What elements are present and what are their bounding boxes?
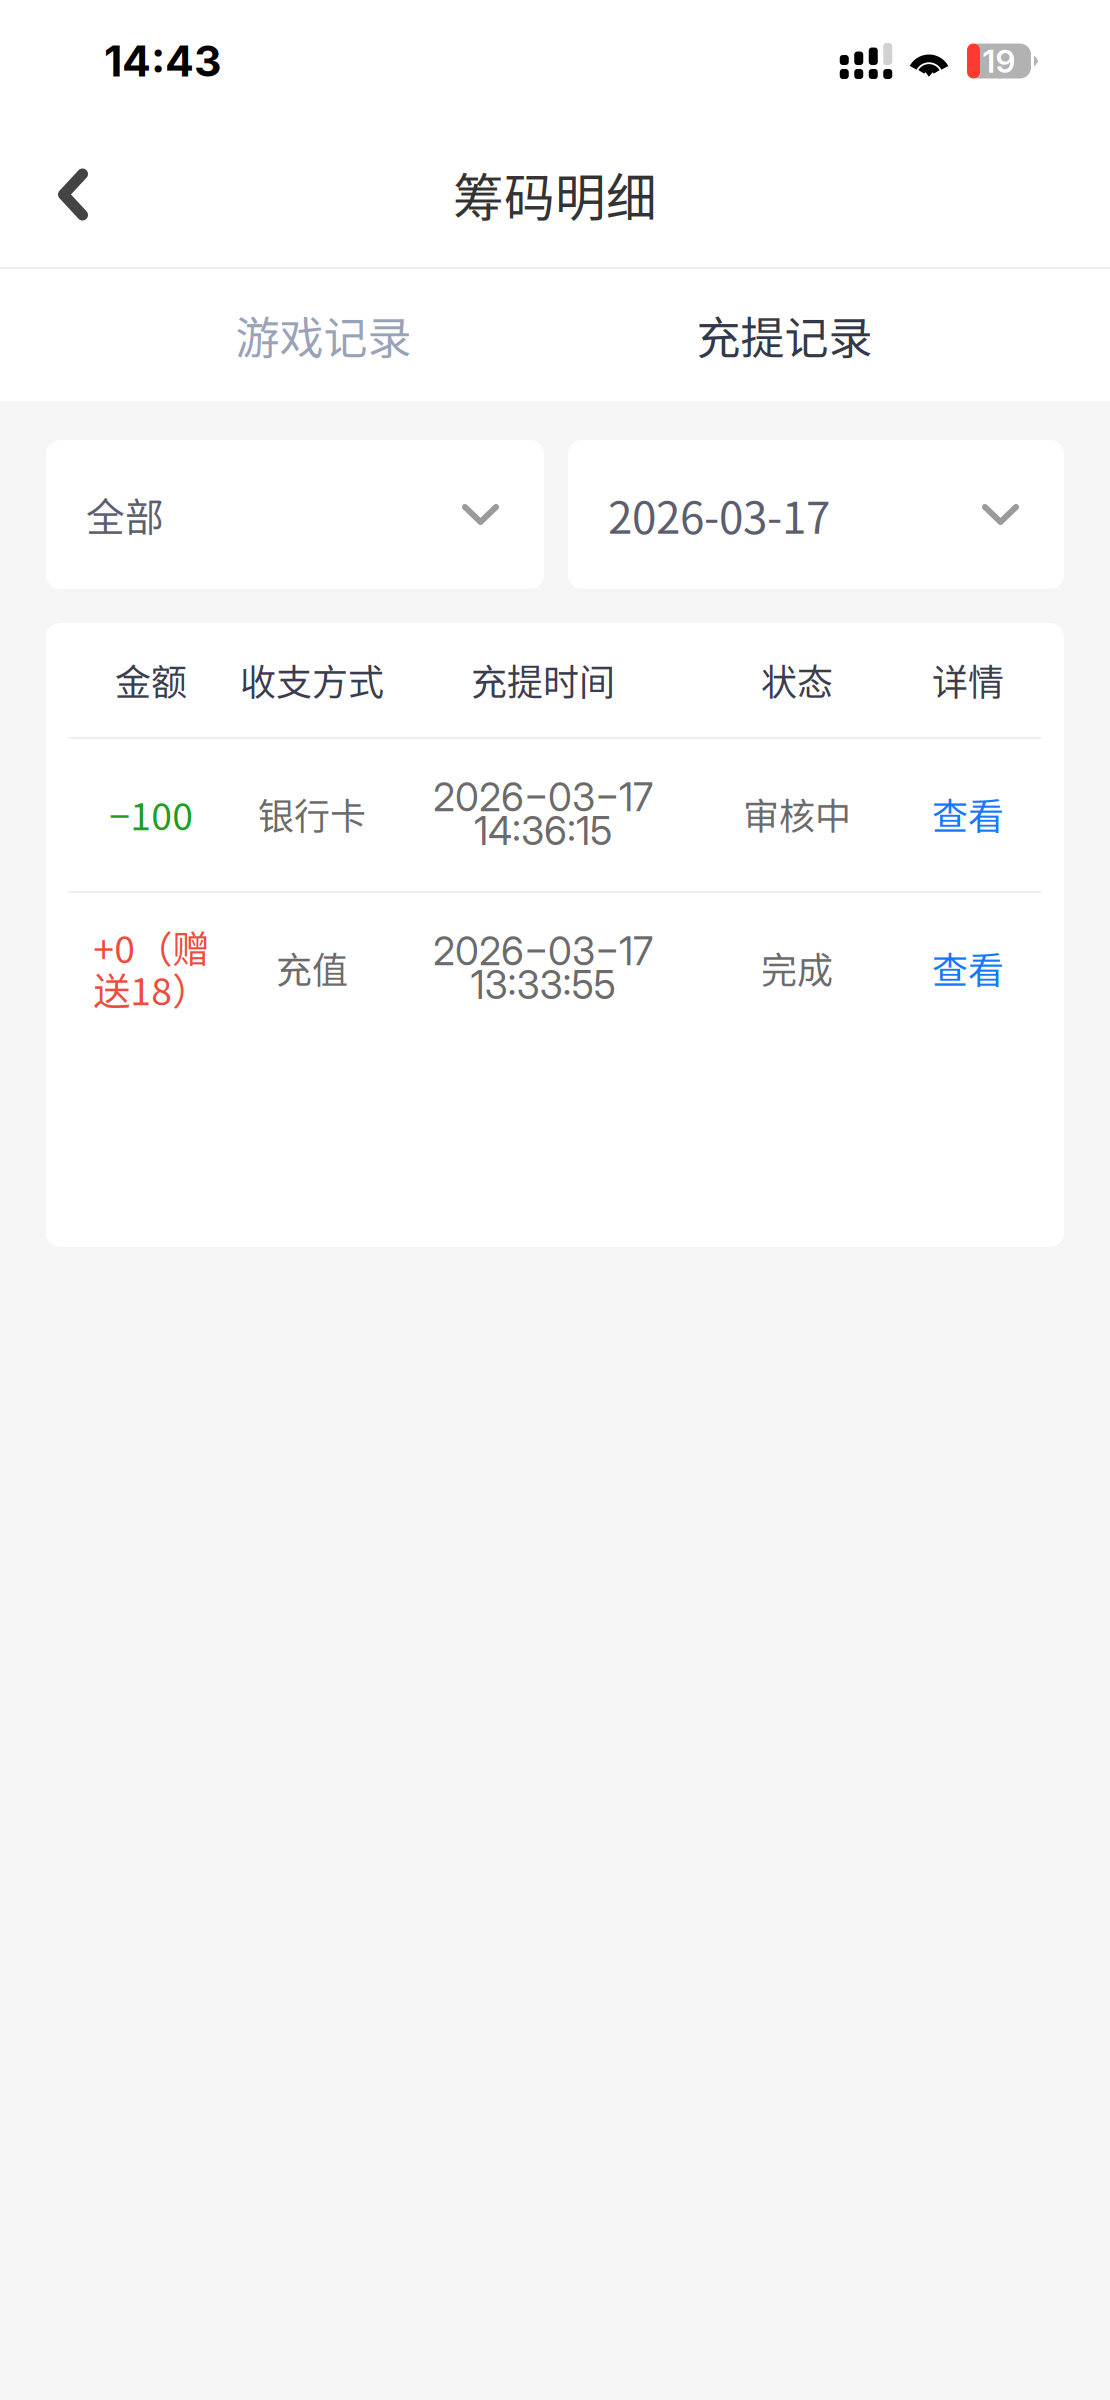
- button[interactable]: Back: [0, 122, 146, 267]
- staticText: 全部: [86, 486, 164, 542]
- staticText: 银行卡: [258, 788, 366, 840]
- staticText: 详情: [932, 654, 1004, 706]
- staticText: 14:36:15: [474, 807, 612, 854]
- staticText: 审核中: [743, 788, 851, 840]
- button[interactable]: 充提记录: [554, 269, 1015, 401]
- staticText: 13:33:55: [470, 961, 615, 1008]
- staticText: 金额: [115, 654, 187, 706]
- staticText: 19: [982, 42, 1015, 80]
- staticText: 游戏记录: [235, 303, 411, 367]
- staticText: 充值: [276, 942, 348, 994]
- staticText: 查看: [932, 788, 1004, 840]
- staticText: 2026−03−17: [433, 774, 653, 820]
- button[interactable]: 游戏记录: [93, 269, 554, 401]
- button[interactable]: 查看: [46, 623, 1064, 1247]
- staticText: 2026−03−17: [433, 928, 653, 974]
- staticText: −100: [109, 787, 193, 841]
- staticText: 状态: [761, 654, 833, 706]
- staticText: 查看: [932, 942, 1004, 994]
- button[interactable]: 全部: [46, 440, 544, 589]
- staticText: 14:43: [104, 35, 222, 87]
- staticText: 充提记录: [696, 303, 872, 367]
- staticText: 充提时间: [471, 654, 615, 706]
- staticText: 筹码明细: [453, 158, 657, 231]
- staticText: 完成: [761, 942, 833, 994]
- button[interactable]: 查看: [46, 623, 1064, 1247]
- staticText: 2026-03-17: [608, 483, 830, 546]
- staticText: 收支方式: [240, 654, 384, 706]
- staticText: +0（赠送18）: [93, 920, 209, 1016]
- button[interactable]: 2026-03-17: [568, 440, 1064, 589]
